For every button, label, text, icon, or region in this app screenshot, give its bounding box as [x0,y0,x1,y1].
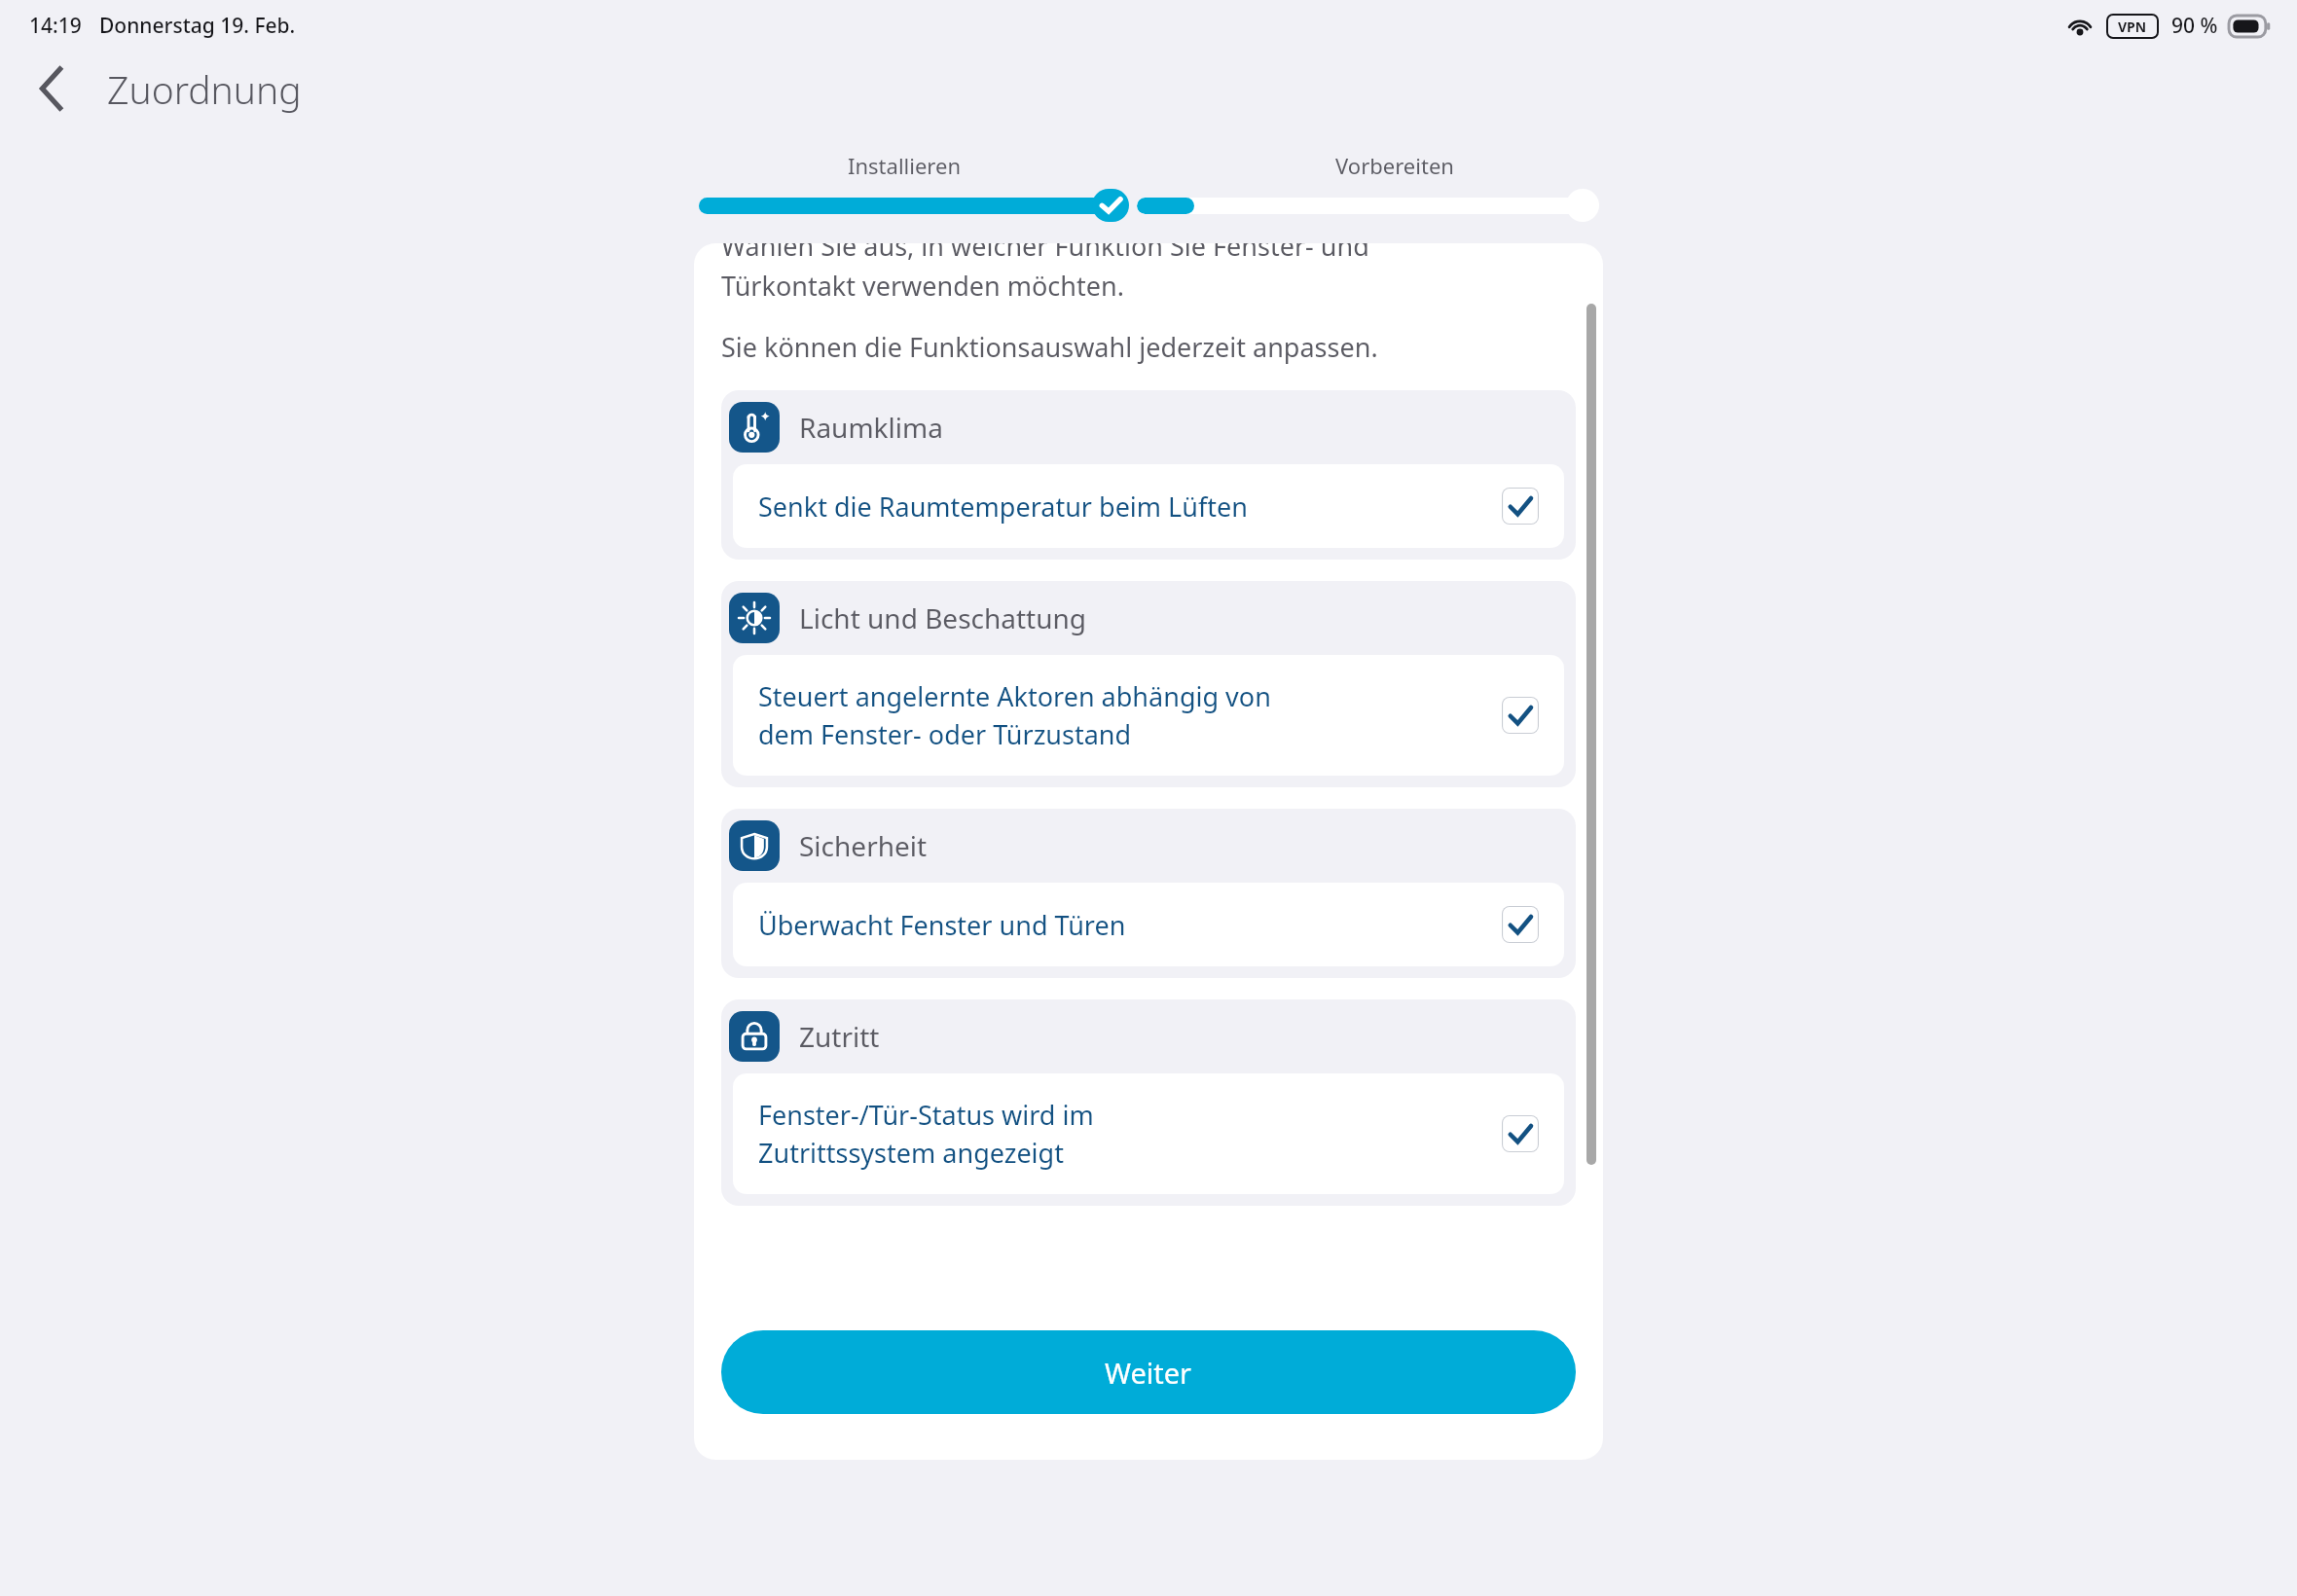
staticText: Weiter [1105,1354,1192,1392]
button[interactable]: Steuert angelernte Aktoren abhängig von … [733,655,1564,776]
staticText: Senkt die Raumtemperatur beim Lüften [758,489,1248,525]
staticText: Licht und Beschattung [799,599,1087,636]
staticText: Vorbereiten [1335,151,1454,180]
staticText: Raumklima [799,409,943,446]
staticText: Sicherheit [799,827,928,864]
staticText: 14:19 [29,12,82,40]
staticText: Überwacht Fenster und Türen [758,907,1126,943]
button[interactable]: Senkt die Raumtemperatur beim Lüften [733,464,1564,548]
button[interactable]: Überwacht Fenster und Türen [733,883,1564,966]
button[interactable]: Fenster-/Tür-Status wird im Zutrittssyst… [733,1073,1564,1194]
staticText: Zutritt [799,1018,880,1055]
button[interactable]: Weiter [721,1330,1576,1414]
button[interactable]: Zurück [21,58,82,119]
staticText: Steuert angelernte Aktoren abhängig von … [758,678,1271,752]
staticText: Zuordnung [107,63,302,115]
staticText: Sie können die Funktionsauswahl jederzei… [721,329,1378,365]
staticText: Installieren [848,151,961,180]
staticText: Donnerstag 19. Feb. [99,12,296,40]
staticText: Wählen Sie aus, in welcher Funktion Sie … [721,243,1369,304]
staticText: VPN [2118,18,2147,36]
staticText: 90 % [2171,12,2218,40]
staticText: Fenster-/Tür-Status wird im Zutrittssyst… [758,1097,1094,1171]
